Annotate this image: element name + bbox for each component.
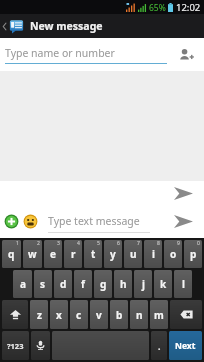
button[interactable]: f <box>74 270 92 298</box>
button[interactable]: n <box>130 300 148 329</box>
staticText: x <box>56 308 62 322</box>
button[interactable]: Shift <box>2 300 28 329</box>
button[interactable]: Next <box>169 331 202 360</box>
button[interactable]: Voice input <box>31 331 50 360</box>
button[interactable]: s <box>34 270 52 298</box>
staticText: 8 <box>157 240 160 247</box>
staticText: z <box>37 308 42 322</box>
button[interactable]: Delete <box>170 300 202 329</box>
staticText: w <box>28 247 37 261</box>
staticText: s <box>40 277 46 291</box>
staticText: h <box>120 277 127 291</box>
staticText: 9 <box>177 240 180 247</box>
button[interactable]: l <box>174 270 192 298</box>
button[interactable]: m <box>150 300 168 329</box>
staticText: 2 <box>37 240 40 247</box>
button[interactable]: Send message <box>171 211 195 231</box>
staticText: Type name or number <box>5 46 115 60</box>
staticText: 6 <box>117 240 120 247</box>
staticText: 12:02 <box>176 1 201 14</box>
button[interactable]: Space <box>52 331 149 360</box>
staticText: g <box>100 277 107 291</box>
staticText: o <box>170 247 177 261</box>
staticText: 7 <box>137 240 140 247</box>
button[interactable]: Type name or number <box>5 46 167 64</box>
button[interactable]: 3 <box>44 240 62 268</box>
button[interactable]: v <box>90 300 108 329</box>
staticText: Type text message <box>48 214 140 228</box>
staticText: l <box>182 277 185 291</box>
button[interactable]: Insert emoticon <box>21 212 40 231</box>
button[interactable]: Send message <box>171 183 195 203</box>
staticText: v <box>96 308 102 322</box>
staticText: p <box>190 247 197 261</box>
button[interactable]: 2 <box>23 240 42 268</box>
staticText: i <box>152 247 155 261</box>
button[interactable]: c <box>70 300 88 329</box>
button[interactable]: g <box>94 270 112 298</box>
button[interactable]: d <box>54 270 72 298</box>
staticText: u <box>130 247 137 261</box>
staticText: t <box>91 247 96 261</box>
staticText: f <box>81 277 85 291</box>
staticText: 4 <box>77 240 80 247</box>
staticText: c <box>76 308 82 322</box>
button[interactable]: 4 <box>64 240 82 268</box>
staticText: New message <box>30 19 103 33</box>
button[interactable]: 5 <box>84 240 102 268</box>
staticText: y <box>110 247 116 261</box>
button[interactable]: x <box>50 300 68 329</box>
staticText: k <box>160 277 167 291</box>
staticText: d <box>60 277 67 291</box>
button[interactable]: Type text message <box>48 214 150 233</box>
staticText: 65% <box>149 2 166 14</box>
staticText: b <box>116 308 123 322</box>
staticText: e <box>50 247 56 261</box>
staticText: m <box>154 308 164 322</box>
staticText: j <box>142 277 145 291</box>
staticText: n <box>136 308 143 322</box>
button[interactable]: 7 <box>124 240 142 268</box>
button[interactable]: 0 <box>184 240 202 268</box>
button[interactable]: Add attachment <box>2 212 21 231</box>
staticText: r <box>71 247 76 261</box>
button[interactable]: 8 <box>144 240 162 268</box>
staticText: q <box>8 247 15 261</box>
button[interactable]: Add recipient from contacts <box>173 42 199 68</box>
button[interactable]: k <box>154 270 172 298</box>
staticText: 0 <box>197 240 200 247</box>
button[interactable]: h <box>114 270 132 298</box>
staticText: Next <box>175 340 196 352</box>
button[interactable]: 9 <box>164 240 182 268</box>
button[interactable]: j <box>134 270 152 298</box>
button[interactable]: z <box>30 300 48 329</box>
staticText: a <box>20 277 26 291</box>
button[interactable]: Back <box>0 14 204 38</box>
staticText: 3 <box>57 240 60 247</box>
staticText: 5 <box>97 240 100 247</box>
button[interactable]: . <box>151 331 167 360</box>
staticText: ?123 <box>7 341 24 351</box>
staticText: 1 <box>16 240 19 247</box>
button[interactable]: 6 <box>104 240 122 268</box>
button[interactable]: a <box>13 270 32 298</box>
button[interactable]: ?123 <box>2 331 29 360</box>
button[interactable]: b <box>110 300 128 329</box>
button[interactable]: 1 <box>2 240 21 268</box>
staticText: . <box>158 340 161 352</box>
